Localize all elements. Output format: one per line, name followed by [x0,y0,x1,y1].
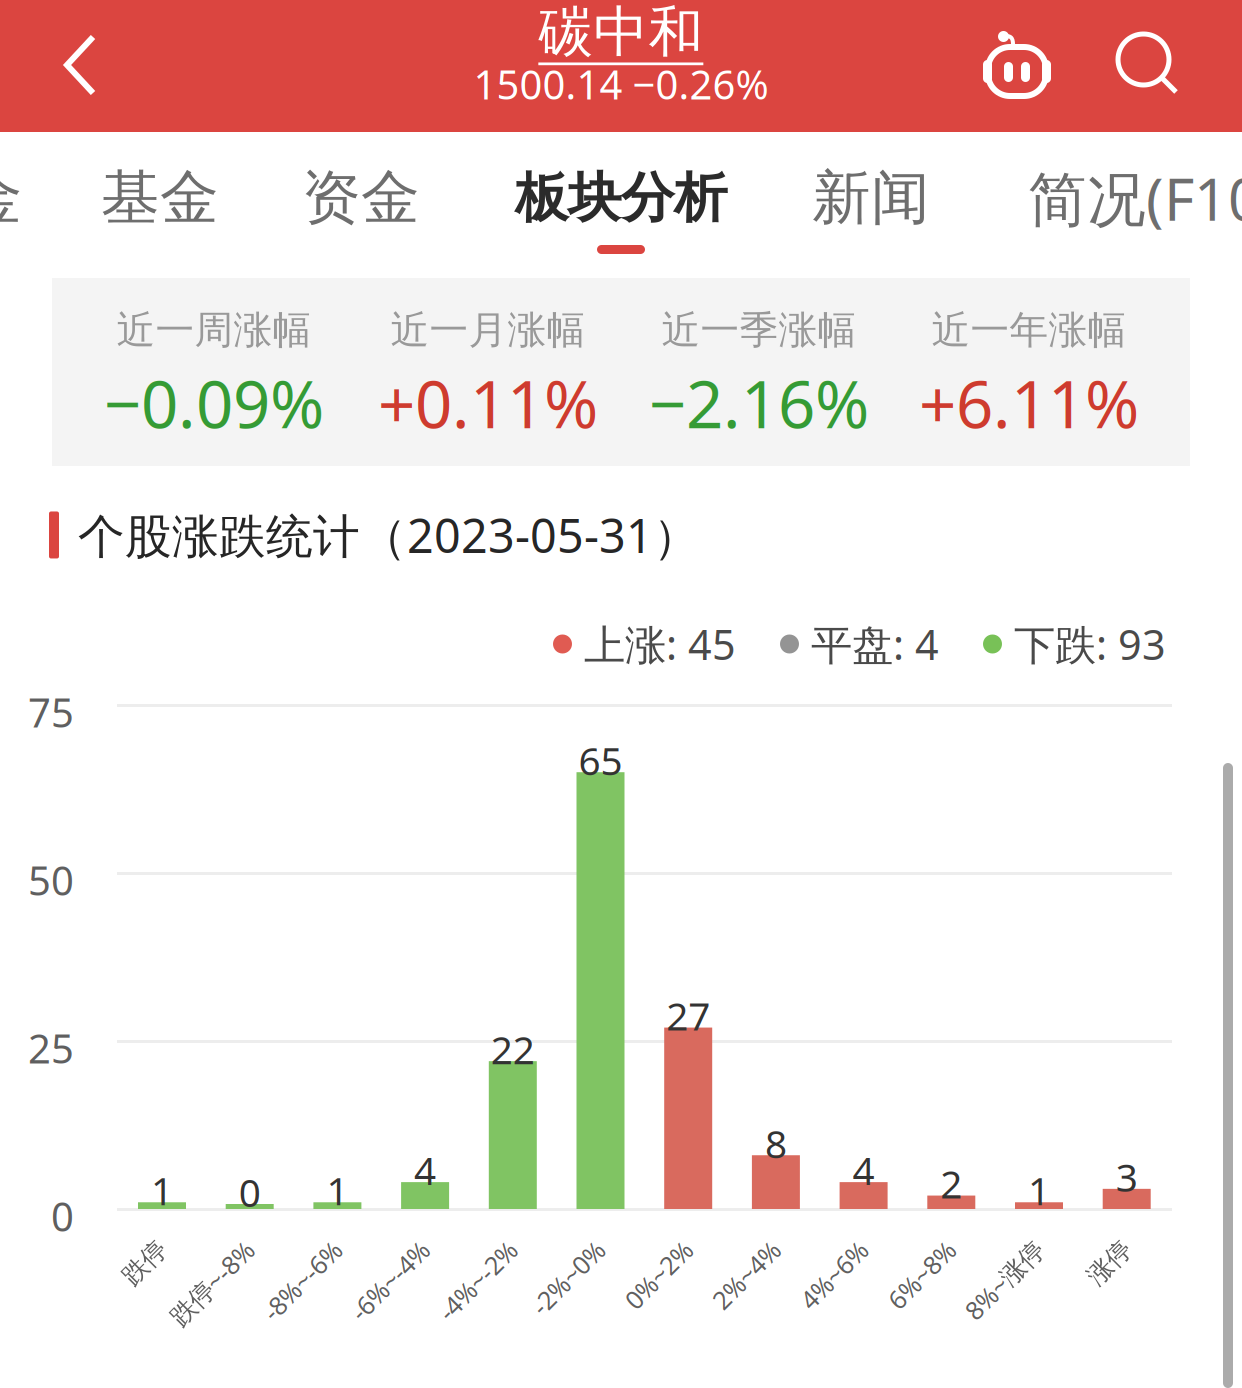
staticText: 0%~2% [590,1234,674,1268]
button[interactable]: 金 [0,132,53,264]
staticText: 基金 [101,162,219,234]
staticText: −0.09% [104,360,324,446]
staticText: +0.11% [378,360,598,446]
staticText: 下跌: 93 [1014,617,1166,671]
staticText: 2 [940,1158,962,1209]
button[interactable]: 新闻 [791,132,951,264]
button[interactable]: AI assistant [970,0,1080,132]
staticText: 50 [28,853,74,906]
staticText: -6%~-4% [311,1234,411,1268]
staticText: 2%~4% [678,1234,762,1268]
staticText: 1 [151,1165,173,1216]
button[interactable]: 板块分析 [496,132,746,264]
staticText: 22 [491,1023,535,1075]
staticText: 75 [28,685,74,738]
staticText: 25 [28,1021,74,1074]
button[interactable]: Back [0,0,160,132]
staticText: 6%~8% [853,1234,937,1268]
staticText: -4%~-2% [399,1234,499,1268]
staticText: 平盘: 4 [811,617,939,671]
staticText: 8 [765,1118,787,1169]
staticText: 1 [326,1165,348,1216]
staticText: 上涨: 45 [584,617,736,671]
staticText: −2.16% [649,360,869,446]
staticText: 近一月涨幅 [390,306,585,354]
button[interactable]: Search [1096,0,1216,132]
staticText: 板块分析 [515,165,727,231]
staticText: 个股涨跌统计（2023-05-31） [78,504,700,566]
staticText: -8%~-6% [223,1234,323,1268]
staticText: 涨停 [1063,1235,1113,1266]
staticText: 27 [666,990,710,1041]
staticText: 4%~6% [766,1234,850,1268]
staticText: 金 [0,162,22,234]
staticText: 4 [853,1144,875,1196]
staticText: +6.11% [919,360,1139,446]
button[interactable]: 资金 [281,132,441,264]
staticText: 近一年涨幅 [931,306,1126,354]
staticText: 3 [1116,1151,1138,1202]
staticText: 0 [51,1189,74,1242]
staticText: 碳中和 [538,0,703,65]
staticText: 跌停 [98,1235,148,1266]
staticText: 近一周涨幅 [116,306,311,354]
staticText: 资金 [302,162,420,234]
staticText: 跌停~-8% [129,1234,236,1268]
staticText: 4 [414,1144,436,1196]
staticText: 新闻 [812,162,930,234]
staticText: 8%~涨停 [926,1234,1025,1268]
staticText: 近一季涨幅 [661,306,856,354]
staticText: 简况(F10 [1028,159,1242,237]
staticText: 65 [578,734,622,786]
button[interactable]: 基金 [80,132,240,264]
staticText: 0 [239,1166,261,1218]
staticText: 1500.14 −0.26% [473,57,768,110]
staticText: 1 [1028,1165,1050,1216]
staticText: -2%~0% [494,1234,586,1268]
button[interactable]: 简况(F10 [1015,132,1242,264]
